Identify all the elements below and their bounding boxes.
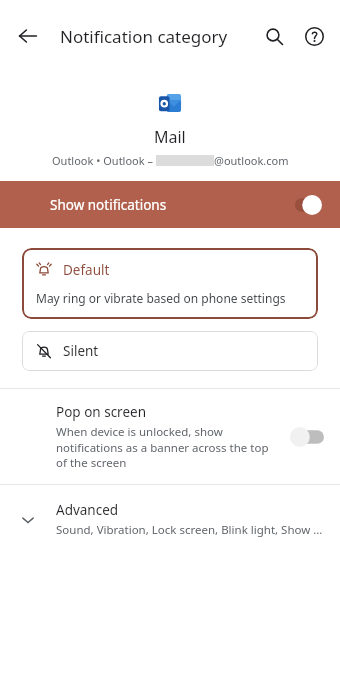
button[interactable]: Silent: [22, 331, 318, 371]
staticText: Outlook • Outlook –: [52, 153, 156, 168]
staticText: @outlook.com: [214, 153, 289, 168]
staticText: When device is unlocked, show notificati…: [56, 424, 276, 470]
button[interactable]: Show notifications: [0, 181, 340, 228]
button[interactable]: Pop on screen: [0, 389, 340, 484]
button[interactable]: Advanced: [0, 485, 340, 554]
staticText: Sound, Vibration, Lock screen, Blink lig…: [56, 522, 324, 538]
button[interactable]: Default: [22, 248, 318, 319]
staticText: Pop on screen: [56, 403, 146, 421]
staticText: May ring or vibrate based on phone setti…: [36, 290, 286, 306]
staticText: Notification category: [60, 25, 254, 48]
button[interactable]: Search: [254, 16, 294, 56]
staticText: Show notifications: [50, 196, 288, 214]
staticText: Default: [63, 261, 110, 279]
button[interactable]: Help: [294, 16, 334, 56]
staticText: Silent: [63, 342, 99, 360]
staticText: Advanced: [56, 501, 119, 519]
button[interactable]: Back: [8, 16, 48, 56]
staticText: Mail: [154, 126, 186, 148]
